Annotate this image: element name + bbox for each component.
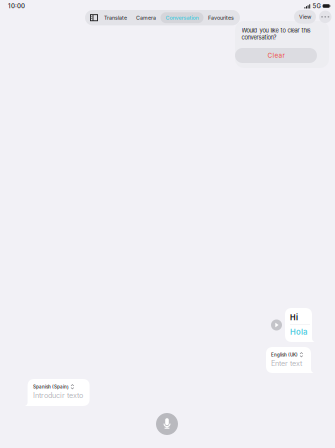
staticText: English (UK) xyxy=(271,352,298,357)
staticText: View xyxy=(299,14,311,20)
button[interactable]: Camera xyxy=(131,12,160,23)
button[interactable]: Conversation xyxy=(160,12,203,23)
button[interactable]: Record xyxy=(156,413,178,435)
staticText: Translate xyxy=(104,14,127,21)
button[interactable]: Translate xyxy=(99,12,131,23)
button[interactable]: More xyxy=(319,11,331,23)
staticText: Spanish (Spain) xyxy=(33,384,69,389)
staticText: Favourites xyxy=(208,14,234,21)
button[interactable]: English (UK) xyxy=(266,347,314,373)
button[interactable]: Spanish (Spain) xyxy=(25,379,90,406)
staticText: 10:00 xyxy=(8,2,25,10)
button[interactable]: Favourites xyxy=(203,12,238,23)
button[interactable]: Play xyxy=(271,319,282,330)
button[interactable]: Clear xyxy=(235,48,317,63)
staticText: Hola xyxy=(290,327,307,336)
staticText: 5G xyxy=(312,2,320,10)
staticText: Would you like to clear this conversatio… xyxy=(241,27,310,41)
button[interactable]: View xyxy=(294,10,316,24)
staticText: Clear xyxy=(267,52,284,59)
staticText: Enter text xyxy=(271,359,302,368)
staticText: Hi xyxy=(290,313,298,322)
button[interactable]: Show sidebar xyxy=(86,11,99,24)
staticText: Camera xyxy=(136,14,156,21)
staticText: Introducir texto xyxy=(33,391,83,400)
staticText: Conversation xyxy=(165,14,198,21)
